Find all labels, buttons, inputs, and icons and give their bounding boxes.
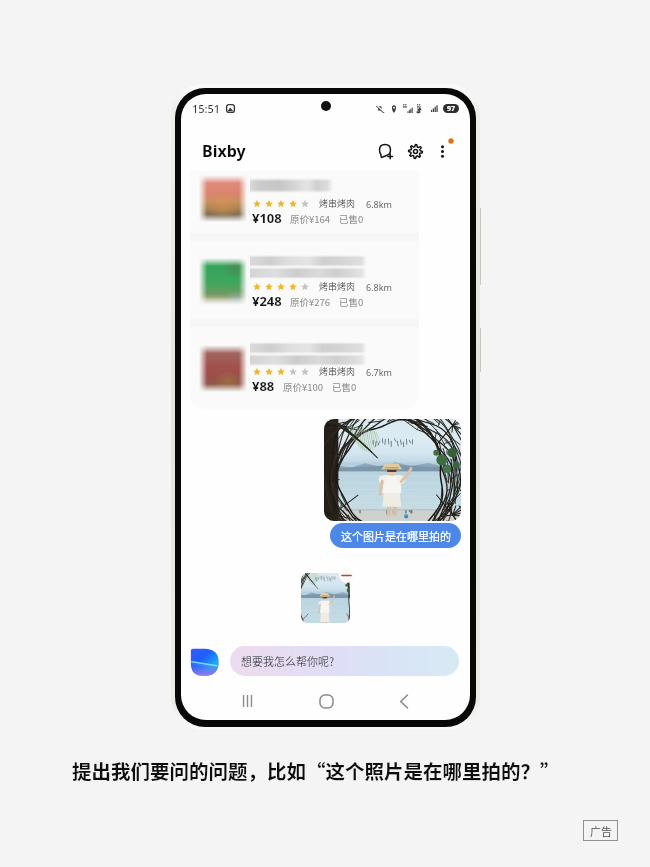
button[interactable]: Settings <box>400 135 430 165</box>
button[interactable] <box>190 171 419 254</box>
staticText: 6.7km <box>366 366 392 378</box>
button[interactable]: 这个图片是在哪里拍的 <box>330 523 461 548</box>
staticText: 已售0 <box>339 295 364 309</box>
staticText: 97 <box>447 104 456 113</box>
staticText: 原价¥164 <box>290 212 331 226</box>
staticText: 已售0 <box>339 212 364 226</box>
staticText: 15:51 <box>192 101 221 116</box>
staticText: ¥88 <box>252 377 275 395</box>
staticText: ¥108 <box>252 209 282 227</box>
staticText: 广告 <box>590 823 612 839</box>
staticText: 烤串烤肉 <box>319 280 356 293</box>
button[interactable]: 想要我怎么帮你呢? <box>230 646 459 676</box>
staticText: 原价¥100 <box>283 380 324 394</box>
button[interactable]: Remove image <box>339 568 354 583</box>
staticText: 6.8km <box>366 281 392 293</box>
button[interactable]: Home <box>310 685 342 717</box>
staticText: 这个图片是在哪里拍的 <box>341 528 451 544</box>
button[interactable] <box>324 419 461 521</box>
staticText: 原价¥276 <box>290 295 331 309</box>
staticText: 烤串烤肉 <box>319 365 356 378</box>
staticText: 已售0 <box>332 380 357 394</box>
staticText: 6.8km <box>366 198 392 210</box>
button[interactable]: New conversation <box>370 135 400 165</box>
staticText: Bixby <box>202 140 246 162</box>
staticText: 想要我怎么帮你呢? <box>241 653 335 669</box>
button[interactable]: Back <box>388 685 420 717</box>
button[interactable]: More options <box>427 135 457 165</box>
staticText: 烤串烤肉 <box>319 197 356 210</box>
staticText: ¥248 <box>252 292 282 310</box>
button[interactable] <box>190 341 419 409</box>
button[interactable]: 广告 <box>583 820 618 841</box>
button[interactable] <box>301 573 350 623</box>
staticText: 提出我们要问的问题，比如“这个照片是在哪里拍的？” <box>72 756 560 784</box>
button[interactable] <box>190 254 419 337</box>
button[interactable]: Recent apps <box>231 685 263 717</box>
